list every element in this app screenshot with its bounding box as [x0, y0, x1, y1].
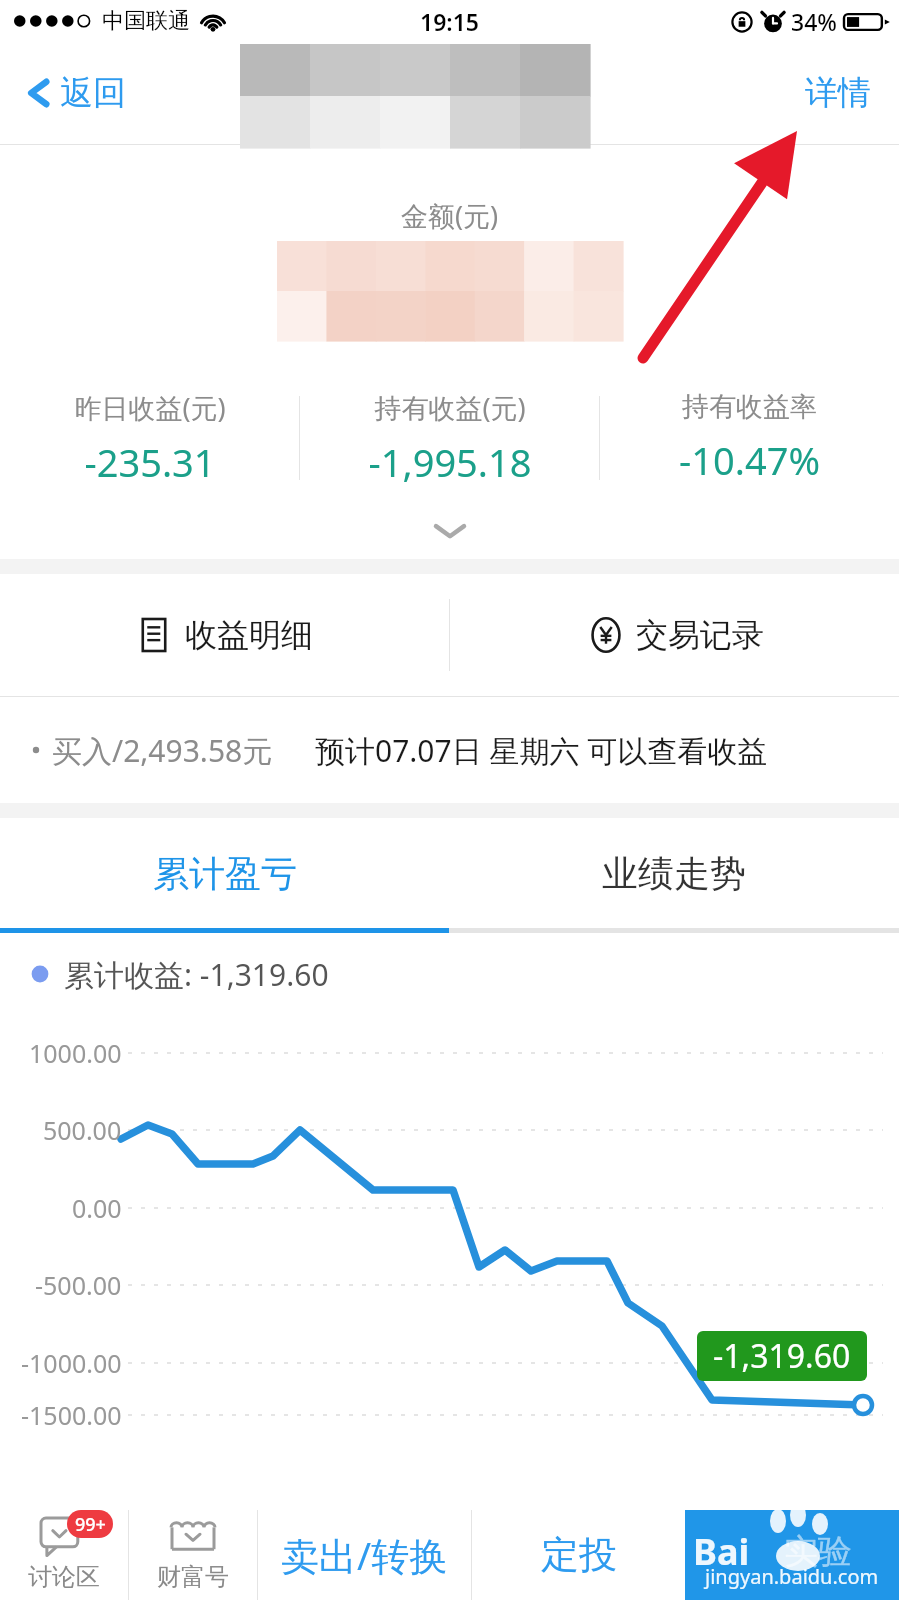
button[interactable]: 收益明细	[0, 574, 449, 696]
button[interactable]: 买入/2,493.58元	[0, 697, 899, 803]
staticText: 详情	[805, 72, 871, 114]
staticText: -10.47%	[679, 434, 820, 486]
staticText: 累计盈亏	[153, 851, 297, 896]
button[interactable]: Expand	[0, 503, 899, 559]
staticText: -1,319.60	[713, 1334, 851, 1378]
staticText: 财富号	[157, 1562, 229, 1592]
staticText: 返回	[60, 72, 126, 114]
staticText: 500.00	[43, 1113, 122, 1147]
staticText: 1000.00	[29, 1036, 122, 1070]
staticText: -235.31	[84, 436, 216, 488]
staticText: 预计07.07日 星期六 可以查看收益	[315, 730, 768, 771]
staticText: 票	[522, 71, 557, 115]
button[interactable]: 财富号	[129, 1510, 257, 1600]
button[interactable]: 返回	[0, 62, 146, 124]
staticText: 讨论区	[28, 1562, 100, 1592]
staticText: 定投	[541, 1531, 617, 1579]
staticText: 累计收益: -1,319.60	[64, 954, 329, 995]
staticText: -1500.00	[21, 1398, 122, 1432]
button[interactable]: 业绩走势	[449, 818, 899, 928]
button[interactable]: 99+	[0, 1510, 128, 1600]
staticText: 持有收益率	[682, 390, 817, 424]
staticText: Bai	[693, 1527, 750, 1576]
staticText: 金额(元)	[401, 197, 499, 234]
staticText: 卖出/转换	[281, 1529, 448, 1581]
staticText: 19:15	[420, 6, 479, 37]
staticText: 收益明细	[185, 615, 313, 655]
staticText: -500.00	[35, 1268, 122, 1302]
staticText: 34%	[791, 6, 837, 37]
staticText: 业绩走势	[602, 851, 746, 896]
staticText: -1000.00	[21, 1346, 122, 1380]
staticText: 中国联通	[102, 7, 190, 35]
staticText: 0.00	[72, 1191, 122, 1225]
staticText: -1,995.18	[368, 436, 532, 488]
staticText: 99+	[75, 1512, 106, 1537]
staticText: 买入/2,493.58元	[52, 730, 273, 771]
button[interactable]: 定投	[472, 1510, 685, 1600]
button[interactable]: 持有收益率	[600, 384, 899, 492]
staticText: 交易记录	[636, 615, 764, 655]
button[interactable]: 累计盈亏	[0, 818, 449, 928]
staticText: 昨日收益(元)	[74, 389, 226, 426]
button[interactable]: 昨日收益(元)	[0, 383, 299, 494]
staticText: 实验	[784, 1530, 852, 1573]
button[interactable]: 交易记录	[450, 574, 899, 696]
button[interactable]: 持有收益(元)	[300, 383, 599, 494]
staticText: jingyan.baidu.com	[705, 1563, 879, 1590]
staticText: 持有收益(元)	[374, 389, 526, 426]
button[interactable]: 详情	[781, 60, 899, 126]
button[interactable]: 卖出/转换	[258, 1510, 471, 1600]
